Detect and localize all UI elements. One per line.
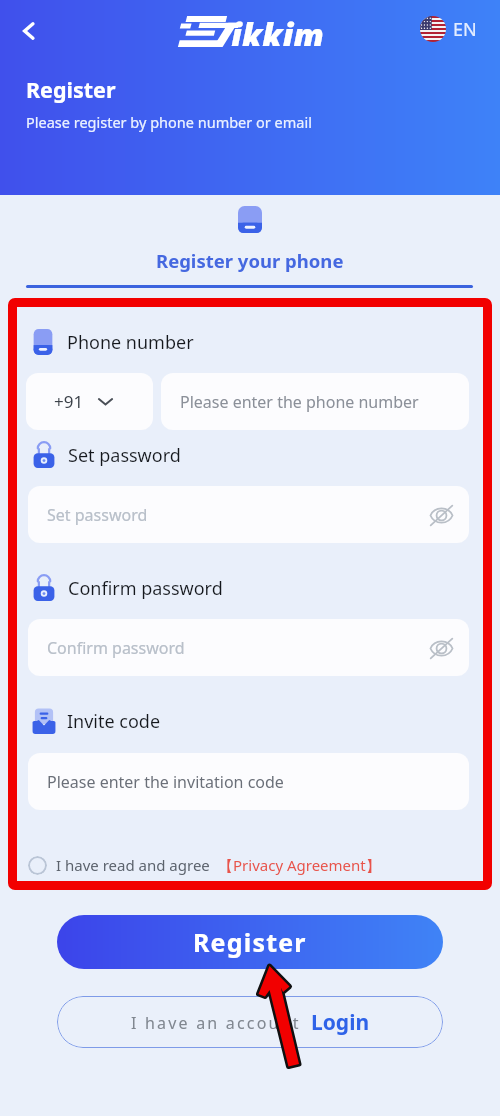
staticText: Confirm password: [68, 576, 223, 601]
staticText: Phone number: [67, 330, 194, 355]
staticText: EN: [453, 17, 477, 42]
button[interactable]: Back: [11, 13, 47, 49]
button[interactable]: I have read and agree: [28, 852, 381, 878]
staticText: I have read and agree: [56, 855, 210, 875]
staticText: Set password: [68, 443, 181, 468]
staticText: Set password: [47, 504, 148, 526]
staticText: Login: [311, 1008, 370, 1037]
staticText: Confirm password: [47, 637, 185, 659]
staticText: Please enter the invitation code: [47, 771, 284, 793]
staticText: I have an account: [131, 1012, 301, 1034]
staticText: ikkim: [231, 13, 324, 46]
button[interactable]: Register: [57, 915, 443, 969]
button[interactable]: EN: [420, 16, 477, 42]
staticText: +91: [54, 390, 84, 413]
staticText: Please enter the phone number: [180, 391, 419, 413]
button[interactable]: Please enter the invitation code: [28, 753, 469, 810]
button[interactable]: +91: [26, 373, 153, 430]
staticText: Register your phone: [156, 248, 344, 273]
button[interactable]: Set password: [28, 486, 469, 543]
staticText: 【Privacy Agreement】: [218, 855, 381, 875]
button[interactable]: Show password: [426, 500, 456, 530]
staticText: Register: [26, 75, 116, 104]
button[interactable]: Confirm password: [28, 619, 469, 676]
staticText: Invite code: [67, 709, 161, 734]
button[interactable]: Please enter the phone number: [161, 373, 469, 430]
staticText: Please register by phone number or email: [26, 112, 312, 132]
button[interactable]: I have an account: [57, 996, 443, 1048]
staticText: Register: [193, 925, 307, 959]
button[interactable]: Show password: [426, 633, 456, 663]
